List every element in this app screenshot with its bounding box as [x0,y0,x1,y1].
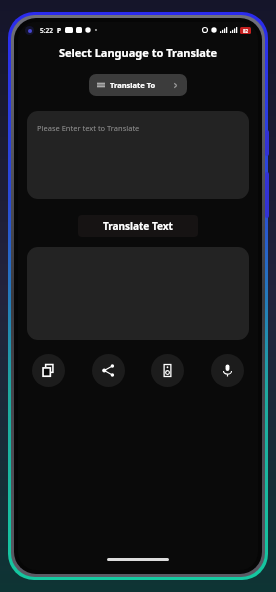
button[interactable]: Translate To [89,74,187,96]
button[interactable]: Please Enter text to Translate [27,111,249,199]
button[interactable]: Speak [151,354,184,387]
button[interactable]: Translate Text [78,215,198,237]
staticText: Please Enter text to Translate [37,123,140,133]
staticText: P [57,26,62,35]
staticText: 82 [243,28,249,34]
staticText: Translate To [110,80,156,90]
button[interactable]: Microphone [211,354,244,387]
staticText: 5:22 [40,26,53,35]
button[interactable]: Copy [32,354,65,387]
button[interactable]: Share [92,354,125,387]
staticText: Translate Text [103,219,173,233]
staticText: Select Language to Translate [18,45,258,60]
